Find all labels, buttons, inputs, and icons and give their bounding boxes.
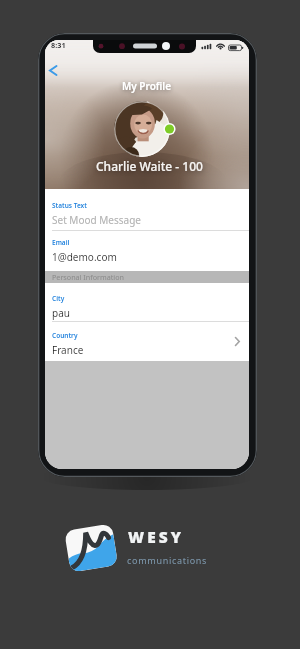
staticText: My Profile bbox=[122, 79, 172, 93]
button[interactable] bbox=[46, 63, 63, 79]
button[interactable] bbox=[64, 521, 118, 573]
staticText: Email bbox=[52, 238, 70, 247]
button[interactable]: Email bbox=[45, 231, 249, 271]
staticText: Charlie Waite - 100 bbox=[96, 158, 203, 174]
button[interactable] bbox=[114, 101, 170, 157]
staticText: Country bbox=[52, 331, 78, 340]
staticText: pau bbox=[52, 306, 70, 320]
button[interactable]: Country bbox=[45, 322, 249, 361]
staticText: Set Mood Message bbox=[52, 213, 141, 227]
staticText: Status Text bbox=[52, 201, 87, 210]
staticText: City bbox=[52, 294, 65, 303]
staticText: 1@demo.com bbox=[52, 250, 117, 264]
button[interactable]: Status Text bbox=[45, 189, 249, 231]
button[interactable]: City bbox=[45, 283, 249, 322]
staticText: Personal Information bbox=[52, 272, 125, 282]
staticText: WESY bbox=[128, 526, 185, 547]
staticText: communications bbox=[127, 554, 208, 566]
staticText: 8:31 bbox=[51, 40, 66, 50]
staticText: France bbox=[52, 343, 84, 357]
